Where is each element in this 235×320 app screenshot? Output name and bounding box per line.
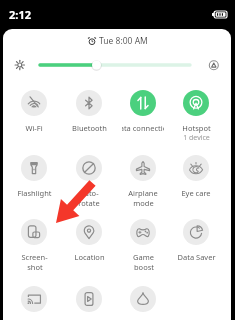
staticText: Data connection [122, 123, 164, 133]
staticText: Bluetooth [72, 123, 107, 133]
staticText: shot [27, 262, 43, 272]
button[interactable]: Screen cast [9, 286, 59, 312]
staticText: rotate [78, 198, 100, 208]
button[interactable]: Screenshot [9, 219, 59, 272]
staticText: 2:12 [9, 7, 31, 22]
button[interactable]: Airplane mode [118, 155, 168, 208]
button[interactable]: Wi-Fi [9, 90, 59, 133]
button[interactable]: Data Saver [171, 219, 221, 262]
staticText: Location [74, 252, 105, 262]
staticText: Game [133, 252, 154, 262]
button[interactable]: Auto-rotate [64, 155, 114, 208]
button[interactable]: Location [64, 219, 114, 262]
staticText: Auto- [79, 188, 99, 198]
button[interactable]: Bluetooth [64, 90, 114, 133]
staticText: Eye care [181, 188, 211, 198]
button[interactable]: Hotspot [171, 90, 221, 143]
button[interactable]: Reading mode [118, 286, 168, 312]
staticText: boost [134, 262, 154, 272]
button[interactable]: Eye care [171, 155, 221, 198]
button[interactable]: Flashlight [9, 155, 59, 198]
staticText: Tue 8:00 AM [99, 35, 148, 47]
staticText: 1 device [183, 133, 210, 143]
staticText: Screen- [21, 252, 48, 262]
staticText: Wi-Fi [25, 123, 43, 133]
button[interactable]: Game boost [118, 219, 168, 272]
button[interactable]: Screen recorder [64, 286, 114, 312]
button[interactable]: Data connection [118, 90, 168, 133]
staticText: Hotspot [182, 123, 211, 133]
staticText: Flashlight [17, 188, 52, 198]
staticText: Data Saver [177, 252, 216, 262]
staticText: mode [133, 198, 154, 208]
staticText: Airplane [128, 188, 158, 198]
